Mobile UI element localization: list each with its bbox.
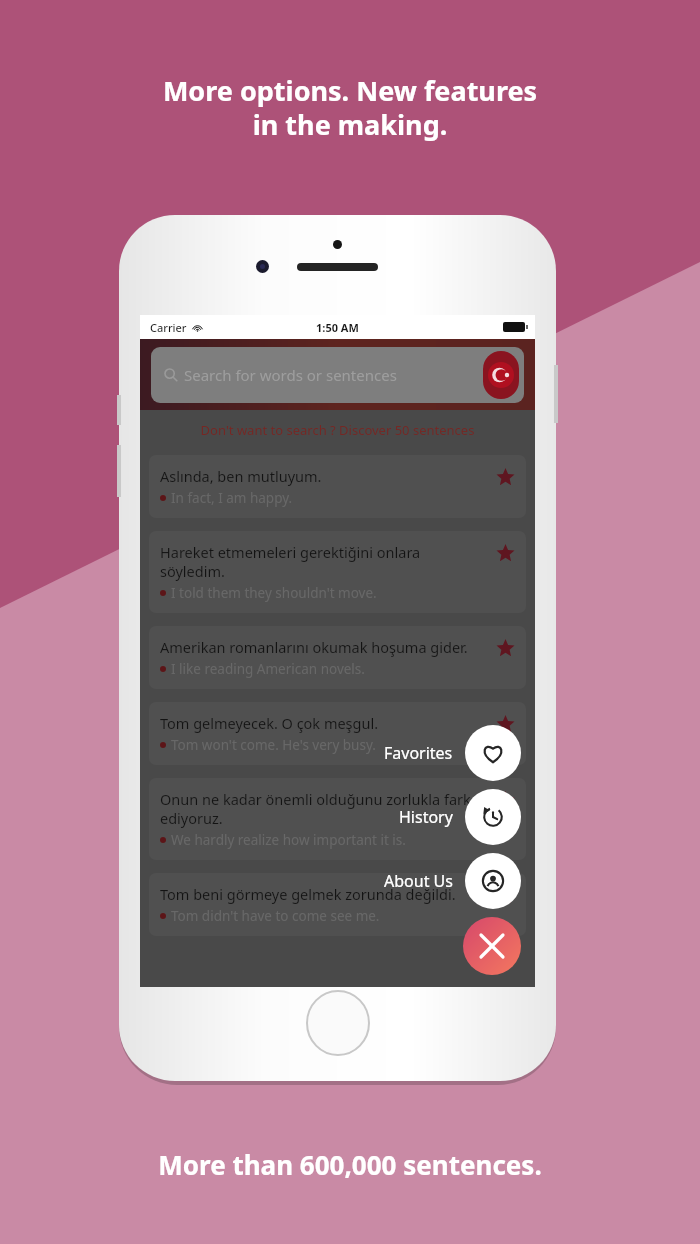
button[interactable]: Favorites [384,725,521,781]
button[interactable]: Language [483,351,519,399]
staticText: I told them they shouldn't move. [171,584,377,602]
button[interactable]: Aslında, ben mutluyum. [149,455,526,518]
staticText: We hardly realize how important it is. [171,831,406,849]
button[interactable]: Close menu [463,917,521,975]
button[interactable]: Search for words or sentences [151,347,524,403]
staticText: Hareket etmemeleri gerektiğini onlara sö… [160,542,481,581]
button[interactable]: About Us [384,853,521,909]
staticText: Search for words or sentences [184,365,397,385]
staticText: History [399,806,453,828]
staticText: I like reading American novels. [171,660,365,678]
staticText: Favorites [384,742,453,764]
button[interactable]: Hareket etmemeleri gerektiğini onlara sö… [149,531,526,613]
staticText: Tom didn't have to come see me. [171,907,380,925]
staticText: Onun ne kadar önemli olduğunu zorlukla f… [160,789,481,828]
staticText: 1:50 AM [316,320,359,335]
staticText: Tom gelmeyecek. O çok meşgul. [160,713,379,733]
staticText: More options. New features in the making… [0,72,700,143]
staticText: Aslında, ben mutluyum. [160,466,322,486]
staticText: More than 600,000 sentences. [0,1147,700,1182]
staticText: In fact, I am happy. [171,489,293,507]
staticText: Carrier [150,320,187,335]
button[interactable]: Tom gelmeyecek. O çok meşgul. [149,702,526,765]
button[interactable]: Amerikan romanlarını okumak hoşuma gider… [149,626,526,689]
button[interactable]: History [399,789,521,845]
staticText: Tom beni görmeye gelmek zorunda değildi. [160,884,456,904]
button[interactable]: Onun ne kadar önemli olduğunu zorlukla f… [149,778,526,860]
staticText: Tom won't come. He's very busy. [171,736,376,754]
button[interactable]: Tom beni görmeye gelmek zorunda değildi. [149,873,526,936]
staticText: Amerikan romanlarını okumak hoşuma gider… [160,637,468,657]
button[interactable]: Don't want to search ? Discover 50 sente… [140,418,535,442]
staticText: About Us [384,870,453,892]
